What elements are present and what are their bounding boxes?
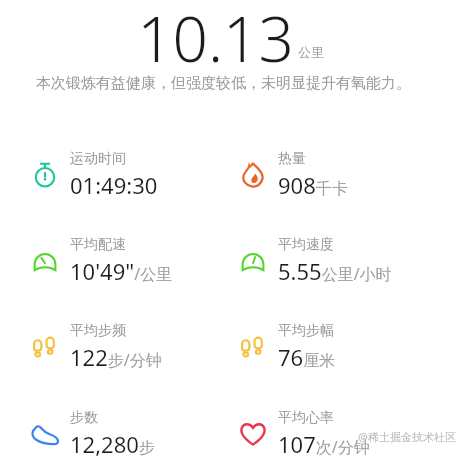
staticText: 01:49:30 — [70, 170, 158, 200]
staticText: 本次锻炼有益健康，但强度较低，未明显提升有氧能力。 — [36, 74, 411, 93]
staticText: 76厘米 — [278, 342, 336, 372]
staticText: 平均步频 — [70, 322, 126, 340]
other: Average cadence — [28, 330, 62, 364]
staticText: 热量 — [278, 150, 306, 168]
staticText: 平均配速 — [70, 236, 126, 254]
staticText: 122步/分钟 — [70, 342, 162, 372]
staticText: 10.13 — [137, 0, 294, 66]
staticText: 5.55公里/小时 — [278, 256, 392, 286]
other: Steps — [28, 417, 62, 451]
staticText: 107次/分钟 — [278, 429, 370, 459]
staticText: 10'49"/公里 — [70, 256, 173, 286]
staticText: 平均步幅 — [278, 322, 334, 340]
other: Average heart rate — [236, 417, 270, 451]
staticText: 908千卡 — [278, 170, 348, 200]
other: Average speed — [236, 244, 270, 278]
staticText: 平均速度 — [278, 236, 334, 254]
other: Average stride — [236, 330, 270, 364]
staticText: 平均心率 — [278, 409, 334, 427]
other: Average pace — [28, 244, 62, 278]
button[interactable]: Steps — [0, 409, 230, 459]
staticText: 运动时间 — [70, 150, 126, 168]
staticText: 步数 — [70, 409, 98, 427]
button[interactable]: Average stride — [230, 322, 460, 372]
other: Duration — [28, 158, 62, 192]
button[interactable]: Average heart rate — [230, 409, 460, 459]
button[interactable]: Duration — [0, 150, 230, 200]
button[interactable]: Calories — [230, 150, 460, 200]
staticText: 公里 — [298, 44, 324, 60]
staticText: 12,280步 — [70, 429, 155, 459]
other: Calories — [236, 158, 270, 192]
button[interactable]: Average cadence — [0, 322, 230, 372]
staticText: @稀土掘金技术社区 — [358, 429, 456, 444]
button[interactable]: Average speed — [230, 236, 460, 286]
button[interactable]: Average pace — [0, 236, 230, 286]
